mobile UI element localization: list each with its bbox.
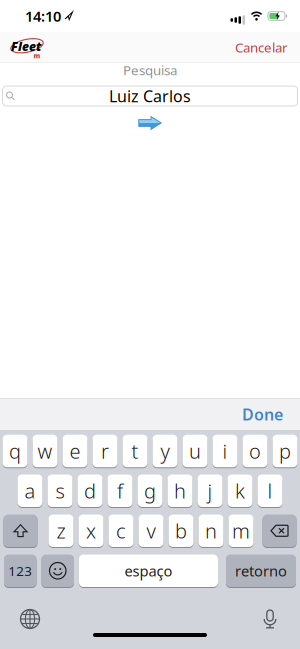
button[interactable]: p — [272, 435, 297, 467]
button[interactable]: h — [167, 474, 192, 507]
button[interactable]: Emoji — [41, 554, 74, 587]
staticText: e — [69, 438, 80, 464]
button[interactable]: i — [212, 435, 237, 467]
staticText: Fleet — [11, 38, 41, 54]
button[interactable]: f — [107, 474, 132, 507]
button[interactable]: s — [47, 474, 72, 507]
button[interactable]: Dictation — [255, 604, 285, 634]
button[interactable]: d — [77, 474, 102, 507]
button[interactable]: t — [122, 435, 147, 467]
button[interactable]: Shift — [3, 514, 37, 547]
staticText: c — [116, 517, 126, 544]
staticText: f — [117, 477, 123, 504]
staticText: b — [175, 517, 187, 544]
staticText: o — [249, 438, 261, 464]
staticText: 123 — [8, 562, 32, 580]
staticText: x — [86, 517, 96, 544]
staticText: h — [174, 477, 186, 504]
staticText: t — [131, 438, 138, 464]
button[interactable]: Done — [242, 404, 300, 425]
staticText: d — [84, 477, 96, 504]
button[interactable]: b — [168, 514, 193, 547]
button[interactable]: z — [48, 514, 73, 547]
staticText: g — [144, 477, 156, 504]
button[interactable]: y — [152, 435, 177, 467]
staticText: v — [146, 517, 155, 544]
staticText: Cancelar — [235, 38, 288, 56]
button[interactable]: Delete — [262, 514, 296, 547]
button[interactable]: e — [62, 435, 87, 467]
staticText: Pesquisa — [123, 61, 177, 79]
staticText: k — [235, 477, 245, 504]
staticText: m — [232, 517, 250, 544]
staticText: p — [279, 438, 291, 464]
button[interactable]: w — [32, 435, 57, 467]
button[interactable]: r — [92, 435, 117, 467]
staticText: 14:10 — [25, 6, 61, 26]
button[interactable]: Pesquisa — [2, 86, 297, 106]
staticText: y — [160, 438, 169, 464]
staticText: Luiz Carlos — [109, 85, 191, 107]
staticText: i — [222, 438, 227, 464]
button[interactable]: l — [257, 474, 282, 507]
button[interactable]: u — [182, 435, 207, 467]
button[interactable]: espaço — [79, 554, 218, 587]
button[interactable]: a — [17, 474, 42, 507]
button[interactable]: m — [228, 514, 253, 547]
button[interactable]: g — [137, 474, 162, 507]
button[interactable]: Cancelar — [235, 38, 300, 56]
button[interactable]: v — [138, 514, 163, 547]
staticText: s — [55, 477, 64, 504]
staticText: Done — [242, 404, 283, 425]
button[interactable]: Next keyboard — [15, 604, 45, 634]
button[interactable]: 123 — [4, 554, 36, 587]
staticText: l — [267, 477, 272, 504]
button[interactable]: j — [197, 474, 222, 507]
staticText: espaço — [124, 561, 172, 580]
staticText: n — [205, 517, 217, 544]
staticText: r — [101, 438, 109, 464]
button[interactable]: k — [227, 474, 252, 507]
staticText: a — [24, 477, 35, 504]
staticText: w — [37, 438, 52, 464]
staticText: z — [56, 517, 65, 544]
staticText: retorno — [235, 561, 287, 580]
button[interactable]: o — [242, 435, 267, 467]
staticText: q — [9, 438, 21, 464]
staticText: m — [33, 51, 40, 60]
staticText: j — [207, 477, 212, 504]
button[interactable]: q — [2, 435, 27, 467]
button[interactable]: c — [108, 514, 133, 547]
button[interactable]: retorno — [226, 554, 296, 587]
button[interactable]: x — [78, 514, 103, 547]
button[interactable]: n — [198, 514, 223, 547]
staticText: u — [189, 438, 201, 464]
